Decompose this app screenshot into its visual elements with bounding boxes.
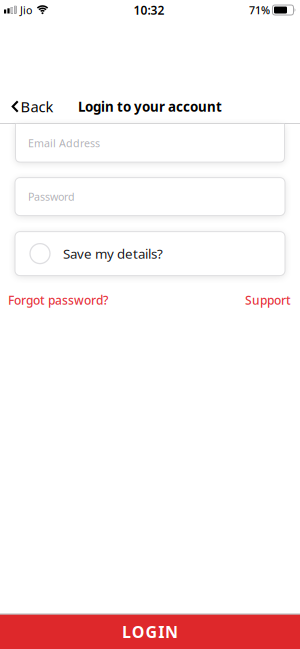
- staticText: Support: [245, 292, 291, 308]
- staticText: Jio: [20, 3, 32, 17]
- staticText: Password: [28, 189, 75, 204]
- staticText: Back: [20, 97, 53, 116]
- staticText: 10:32: [133, 2, 164, 18]
- button[interactable]: Back: [0, 93, 53, 120]
- staticText: LOGIN: [122, 621, 178, 642]
- staticText: Save my details?: [63, 245, 163, 262]
- button[interactable]: Support: [245, 292, 291, 308]
- button[interactable]: LOGIN: [0, 615, 300, 649]
- staticText: Login to your account: [78, 98, 222, 115]
- staticText: 71%: [249, 3, 270, 17]
- staticText: Email Address: [28, 136, 100, 150]
- button[interactable]: Save my details?: [0, 232, 300, 276]
- button[interactable]: Forgot password?: [8, 292, 108, 308]
- staticText: Forgot password?: [8, 292, 108, 308]
